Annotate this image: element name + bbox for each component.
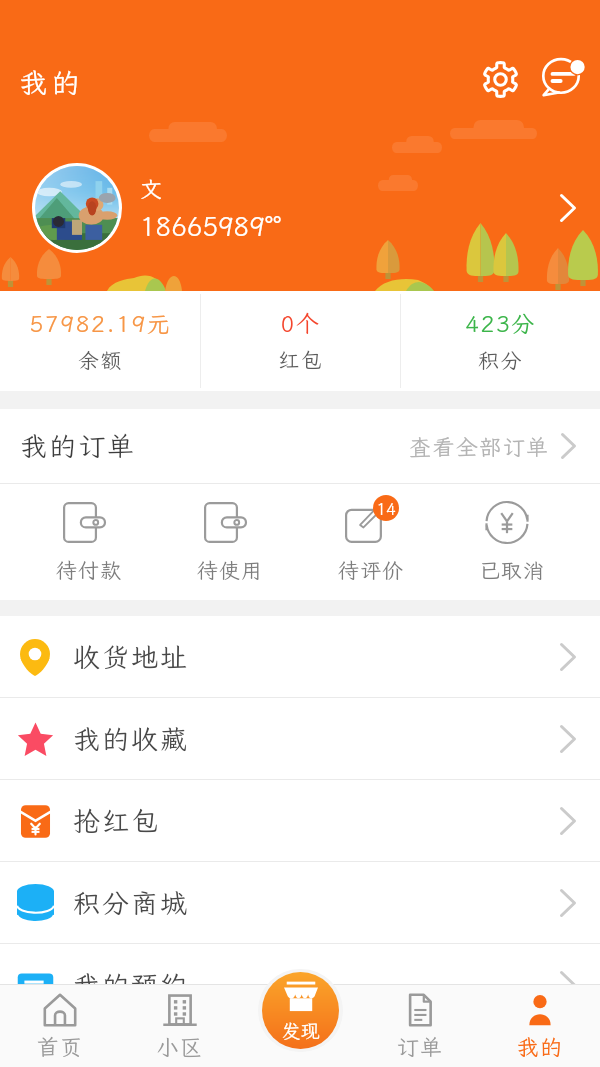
button[interactable]: 首页	[0, 984, 120, 1067]
button[interactable]: 小区	[120, 984, 240, 1067]
staticText: 首页	[36, 1032, 84, 1061]
button[interactable]: 发现	[262, 972, 339, 1049]
button[interactable]: 文	[0, 160, 600, 256]
staticText: 查看全部订单	[409, 432, 550, 461]
staticText: 小区	[156, 1032, 204, 1061]
staticText: 我的	[19, 64, 85, 101]
button[interactable]: 收货地址	[0, 616, 600, 697]
staticText: 收货地址	[73, 639, 189, 675]
button[interactable]: 我的	[480, 984, 600, 1067]
button[interactable]: 待付款	[18, 484, 159, 600]
staticText: 积分商城	[73, 885, 189, 921]
button[interactable]: 我的预约	[0, 944, 600, 1025]
button[interactable]: Messages	[541, 55, 587, 101]
button[interactable]: 57982.19元	[0, 291, 200, 391]
button[interactable]: 14	[300, 484, 441, 600]
staticText: 待使用	[197, 556, 263, 584]
button[interactable]: 0个	[201, 291, 400, 391]
button[interactable]: 我的收藏	[0, 698, 600, 779]
button[interactable]: 已取消	[441, 484, 582, 600]
staticText: 0个	[280, 308, 321, 338]
staticText: 我的	[516, 1032, 564, 1061]
staticText: 文	[140, 174, 163, 203]
button[interactable]: 抢红包	[0, 780, 600, 861]
staticText: 14	[376, 498, 396, 519]
staticText: 18665989°°	[140, 209, 282, 243]
button[interactable]: 订单	[360, 984, 480, 1067]
button[interactable]: 积分商城	[0, 862, 600, 943]
staticText: 抢红包	[73, 803, 160, 839]
button[interactable]: Settings	[478, 57, 523, 102]
staticText: 余额	[78, 346, 123, 374]
staticText: 发现	[281, 1018, 320, 1043]
staticText: 423分	[465, 308, 536, 338]
staticText: 红包	[278, 346, 323, 374]
staticText: 我的收藏	[73, 721, 189, 757]
staticText: 已取消	[479, 556, 545, 584]
staticText: 57982.19元	[29, 308, 172, 338]
button[interactable]: 423分	[401, 291, 600, 391]
staticText: 待评价	[338, 556, 404, 584]
staticText: 待付款	[56, 556, 122, 584]
staticText: 我的订单	[20, 428, 136, 464]
button[interactable]: 待使用	[159, 484, 300, 600]
staticText: 我的预约	[73, 967, 189, 1003]
staticText: 积分	[478, 346, 523, 374]
staticText: 订单	[396, 1032, 444, 1061]
button[interactable]: 我的订单	[0, 409, 600, 483]
